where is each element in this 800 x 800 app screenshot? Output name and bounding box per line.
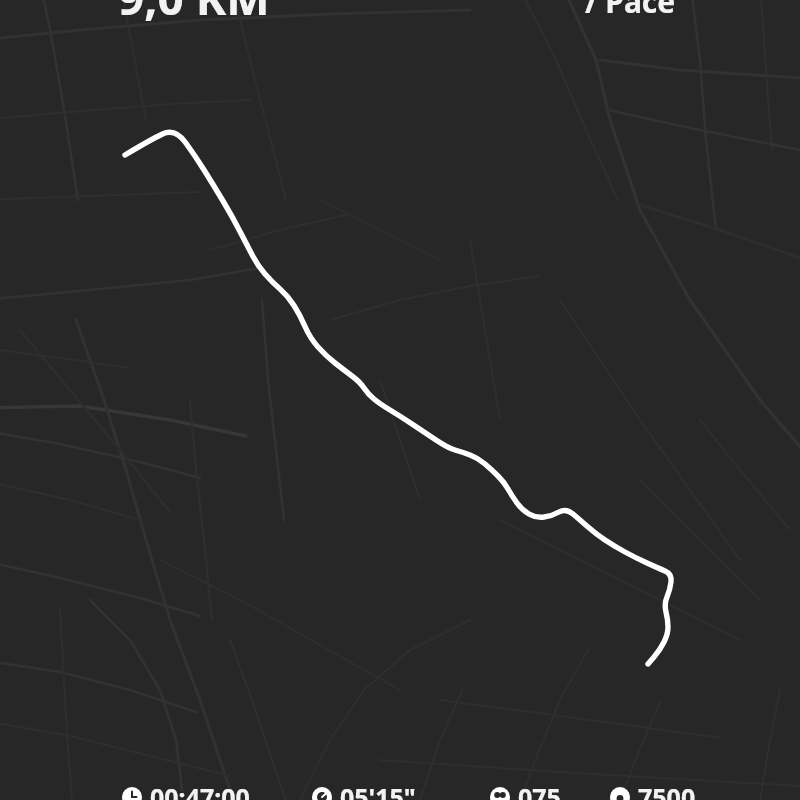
button[interactable]: Activity route map bbox=[0, 0, 800, 800]
